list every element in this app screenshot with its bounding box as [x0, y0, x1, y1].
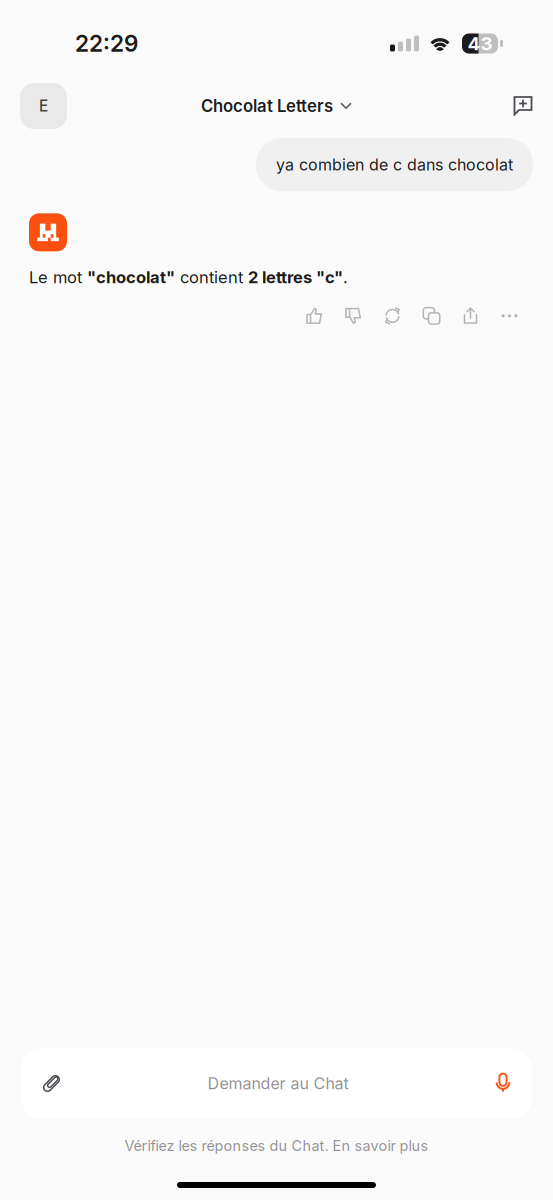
staticText: 43 — [467, 32, 492, 55]
button[interactable]: Demander au Chat — [21, 1048, 532, 1119]
button[interactable]: Good response — [295, 301, 334, 331]
button[interactable]: New chat — [504, 85, 542, 127]
staticText: E — [39, 97, 48, 115]
staticText: Vérifiez les réponses du Chat. En savoir… — [124, 1137, 428, 1154]
button[interactable]: Copy — [412, 301, 451, 331]
button[interactable]: Bad response — [334, 301, 373, 331]
button[interactable]: More options — [490, 301, 529, 331]
staticText: Chocolat Letters — [201, 96, 333, 116]
staticText: 22:29 — [75, 30, 138, 57]
staticText: ya combien de c dans chocolat — [276, 155, 513, 174]
button[interactable]: Regenerate — [373, 301, 412, 331]
button[interactable]: Share — [451, 301, 490, 331]
button[interactable]: Account — [20, 83, 67, 129]
button[interactable]: Chocolat Letters — [193, 90, 360, 122]
staticText: Demander au Chat — [207, 1074, 348, 1093]
staticText: Le mot "chocolat" contient 2 lettres "c"… — [29, 267, 348, 287]
